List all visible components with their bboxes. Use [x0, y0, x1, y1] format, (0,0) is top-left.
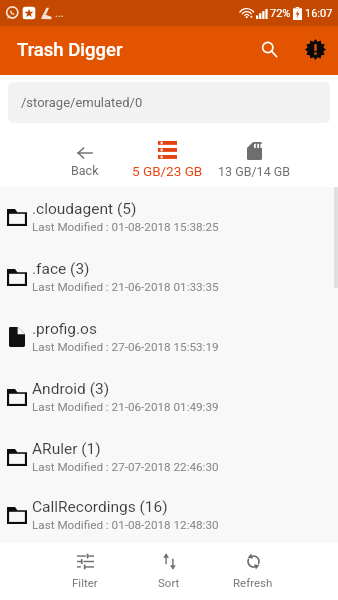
staticText: .profig.os — [32, 320, 97, 338]
staticText: 16:07 — [305, 7, 333, 20]
staticText: Filter — [72, 576, 98, 589]
button[interactable]: .cloudagent (5) — [0, 187, 338, 247]
staticText: ... — [55, 7, 64, 20]
button[interactable]: .face (3) — [0, 247, 338, 307]
button[interactable]: Warning — [295, 26, 335, 66]
button[interactable]: Android (3) — [0, 367, 338, 427]
button[interactable]: Sort — [131, 549, 207, 593]
staticText: Last Modified : 21-06-2018 01:33:35 — [32, 280, 219, 294]
staticText: CallRecordings (16) — [32, 498, 168, 516]
button[interactable]: 13 GB/14 GB — [212, 139, 296, 182]
staticText: Last Modified : 21-06-2018 01:49:39 — [32, 400, 219, 414]
button[interactable]: Back — [57, 141, 113, 181]
staticText: Sort — [158, 576, 180, 589]
staticText: ARuler (1) — [32, 440, 101, 458]
staticText: /storage/emulated/0 — [21, 95, 143, 110]
staticText: Trash Digger — [17, 39, 123, 61]
button[interactable]: .profig.os — [0, 307, 338, 367]
button[interactable]: Search — [249, 26, 289, 66]
staticText: .face (3) — [32, 260, 90, 278]
staticText: Android (3) — [32, 380, 110, 398]
staticText: 5 GB/23 GB — [132, 163, 203, 179]
staticText: Refresh — [233, 576, 273, 589]
button[interactable]: 5 GB/23 GB — [127, 138, 207, 182]
staticText: Last Modified : 01-08-2018 12:48:30 — [32, 518, 219, 532]
staticText: Last Modified : 27-06-2018 15:53:19 — [32, 340, 219, 354]
button[interactable]: CallRecordings (16) — [0, 487, 338, 543]
staticText: 13 GB/14 GB — [218, 164, 291, 179]
staticText: .cloudagent (5) — [32, 200, 137, 218]
button[interactable]: Refresh — [215, 549, 291, 593]
staticText: Last Modified : 27-07-2018 22:46:30 — [32, 460, 219, 474]
button[interactable]: ARuler (1) — [0, 427, 338, 487]
staticText: Back — [71, 163, 99, 178]
staticText: 72% — [270, 7, 291, 20]
button[interactable]: Filter — [47, 549, 123, 593]
button[interactable]: /storage/emulated/0 — [8, 82, 330, 123]
staticText: Last Modified : 01-08-2018 15:38:25 — [32, 220, 219, 234]
